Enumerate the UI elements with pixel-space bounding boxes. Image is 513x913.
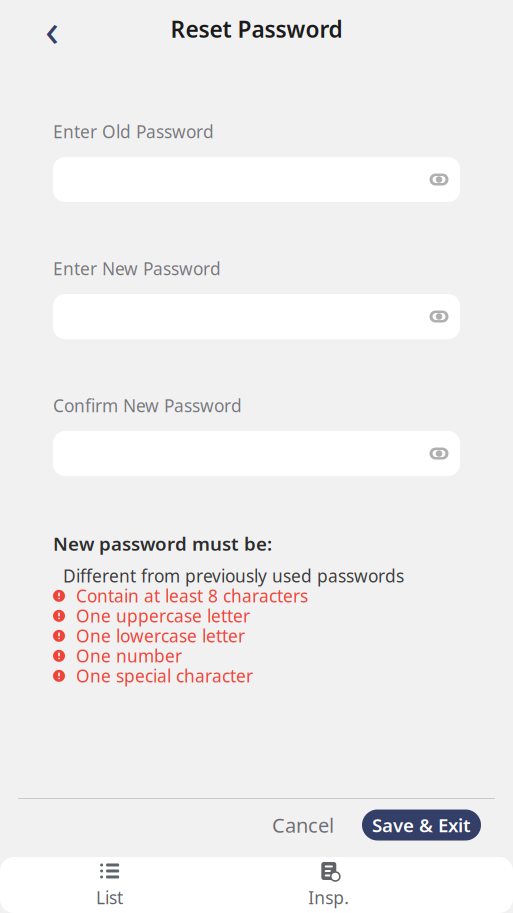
button[interactable]: Back xyxy=(30,7,74,51)
staticText: Insp. xyxy=(308,886,349,909)
staticText: List xyxy=(96,886,123,909)
button[interactable]: Show password xyxy=(422,437,456,471)
staticText: Reset Password xyxy=(170,14,342,44)
staticText: Contain at least 8 characters xyxy=(76,584,308,607)
button[interactable]: Show password xyxy=(422,299,456,333)
staticText: Enter Old Password xyxy=(53,120,214,143)
button[interactable]: Cancel xyxy=(260,804,346,846)
staticText: One lowercase letter xyxy=(76,624,245,647)
staticText: Different from previously used passwords xyxy=(63,564,404,587)
button[interactable]: List xyxy=(75,859,145,911)
staticText: Confirm New Password xyxy=(53,394,242,417)
button[interactable]: Insp. xyxy=(294,859,364,911)
staticText: One number xyxy=(76,644,182,667)
staticText: Save & Exit xyxy=(372,813,471,837)
staticText: One special character xyxy=(76,664,253,687)
button[interactable]: Show password xyxy=(422,162,456,196)
button[interactable]: Save & Exit xyxy=(362,809,481,840)
staticText: Cancel xyxy=(272,812,334,838)
staticText: One uppercase letter xyxy=(76,604,250,627)
staticText: ‹ xyxy=(45,0,59,59)
staticText: New password must be: xyxy=(53,531,272,556)
staticText: Enter New Password xyxy=(53,257,221,280)
